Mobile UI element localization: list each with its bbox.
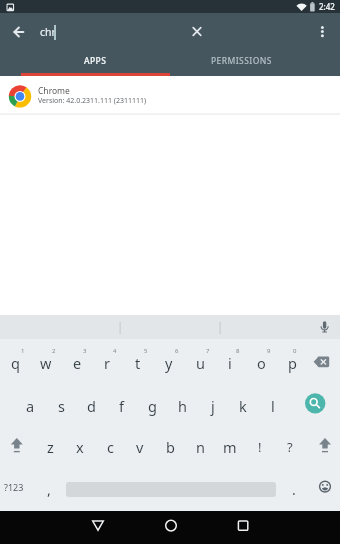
staticText: 6 <box>175 347 179 355</box>
button[interactable] <box>0 76 340 114</box>
staticText: 2 <box>52 347 56 355</box>
button[interactable]: d <box>77 393 105 419</box>
staticText: 9 <box>267 347 271 355</box>
staticText: b <box>166 437 175 457</box>
staticText: 5 <box>144 347 148 355</box>
staticText: w <box>40 353 52 373</box>
button[interactable]: v <box>126 434 154 460</box>
staticText: m <box>223 437 237 457</box>
button[interactable]: k <box>229 393 257 419</box>
staticText: c <box>107 437 114 457</box>
button[interactable]: u <box>186 350 214 376</box>
staticText: 2:42 <box>319 1 335 12</box>
button[interactable]: b <box>156 434 184 460</box>
button[interactable]: w <box>32 350 60 376</box>
button[interactable]: f <box>107 393 135 419</box>
button[interactable]: t <box>124 350 152 376</box>
staticText: 0 <box>293 347 297 355</box>
button[interactable] <box>229 514 257 538</box>
staticText: g <box>148 396 157 416</box>
button[interactable]: , <box>39 480 59 498</box>
button[interactable]: s <box>47 393 75 419</box>
staticText: u <box>196 353 205 373</box>
staticText: f <box>119 396 124 416</box>
staticText: PERMISSIONS <box>211 55 272 67</box>
staticText: 7 <box>206 347 210 355</box>
button[interactable] <box>313 478 337 498</box>
staticText: y <box>165 353 173 373</box>
button[interactable]: r <box>93 350 121 376</box>
staticText: o <box>257 353 266 373</box>
staticText: chr <box>40 25 56 39</box>
button[interactable] <box>8 22 28 42</box>
button[interactable]: n <box>186 434 214 460</box>
button[interactable] <box>308 349 338 373</box>
button[interactable]: APPS <box>21 49 170 73</box>
button[interactable]: h <box>168 393 196 419</box>
staticText: , <box>47 480 51 498</box>
button[interactable] <box>312 21 332 41</box>
button[interactable]: x <box>66 434 94 460</box>
staticText: h <box>178 396 187 416</box>
button[interactable] <box>4 433 30 457</box>
button[interactable]: g <box>138 393 166 419</box>
staticText: 8 <box>236 347 240 355</box>
button[interactable] <box>84 514 112 538</box>
button[interactable]: j <box>199 393 227 419</box>
staticText: z <box>47 437 54 457</box>
staticText: k <box>239 396 247 416</box>
staticText: l <box>271 396 275 416</box>
staticText: s <box>58 396 65 416</box>
button[interactable]: i <box>216 350 244 376</box>
staticText: q <box>11 353 20 373</box>
staticText: ! <box>258 438 262 456</box>
staticText: . <box>292 480 296 498</box>
staticText: ?123 <box>4 481 24 493</box>
staticText: r <box>104 353 110 373</box>
button[interactable]: PERMISSIONS <box>170 49 312 73</box>
staticText: t <box>135 353 141 373</box>
staticText: 4 <box>113 347 117 355</box>
staticText: ? <box>287 438 293 456</box>
button[interactable]: l <box>259 393 287 419</box>
button[interactable]: . <box>284 480 304 498</box>
button[interactable] <box>187 21 207 41</box>
button[interactable]: c <box>96 434 124 460</box>
button[interactable]: e <box>63 350 91 376</box>
staticText: x <box>76 437 84 457</box>
button[interactable]: o <box>247 350 275 376</box>
staticText: e <box>73 353 82 373</box>
button[interactable]: ! <box>246 434 274 460</box>
staticText: i <box>228 353 232 373</box>
staticText: Version: 42.0.2311.111 (2311111) <box>38 96 147 105</box>
staticText: a <box>26 396 35 416</box>
button[interactable]: ?123 <box>0 478 29 496</box>
staticText: j <box>211 396 215 416</box>
button[interactable]: ? <box>276 434 304 460</box>
button[interactable]: m <box>216 434 244 460</box>
button[interactable] <box>157 514 185 538</box>
button[interactable]: a <box>16 393 44 419</box>
staticText: 1 <box>21 347 25 355</box>
button[interactable]: p <box>278 350 306 376</box>
staticText: d <box>87 396 96 416</box>
staticText: v <box>136 437 144 457</box>
button[interactable] <box>303 391 328 416</box>
staticText: APPS <box>84 55 107 67</box>
button[interactable]: q <box>1 350 29 376</box>
button[interactable] <box>312 433 338 457</box>
button[interactable]: z <box>36 434 64 460</box>
staticText: n <box>196 437 205 457</box>
staticText: 3 <box>83 347 87 355</box>
button[interactable]: y <box>155 350 183 376</box>
staticText: p <box>288 353 297 373</box>
button[interactable] <box>313 315 337 339</box>
staticText: Chrome <box>38 85 70 96</box>
